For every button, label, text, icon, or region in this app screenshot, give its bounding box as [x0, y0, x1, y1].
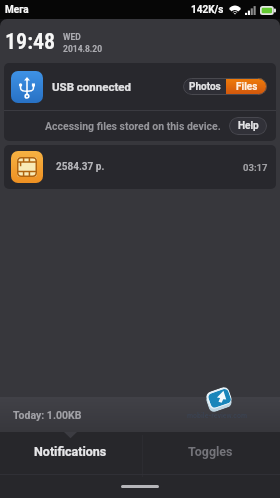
- staticText: 19:48: [5, 29, 56, 55]
- staticText: mobile-review.com: [187, 412, 248, 420]
- staticText: Help: [238, 120, 259, 132]
- button[interactable]: USB connected: [4, 63, 276, 110]
- button[interactable]: Notifications: [0, 432, 140, 474]
- staticText: 2014.8.20: [63, 44, 103, 54]
- staticText: Accessing files stored on this device.: [45, 120, 221, 132]
- staticText: Мега: [5, 4, 29, 16]
- staticText: Files: [236, 81, 258, 93]
- staticText: WED: [63, 32, 81, 42]
- staticText: 03:17: [243, 162, 268, 173]
- other: Battery: [260, 6, 276, 15]
- staticText: Today: 1.00KB: [13, 409, 82, 421]
- button[interactable]: Photos: [183, 78, 226, 95]
- staticText: 2584.37 р.: [56, 161, 105, 173]
- button[interactable]: Toggles: [140, 432, 280, 474]
- staticText: Photos: [189, 81, 221, 93]
- button[interactable]: Files: [226, 78, 267, 95]
- button[interactable]: 2584.37 р.: [4, 145, 276, 189]
- button[interactable]: Accessing files stored on this device.: [4, 111, 276, 141]
- staticText: Toggles: [188, 444, 233, 459]
- other: Signal strength: [245, 6, 256, 15]
- staticText: USB connected: [52, 80, 132, 93]
- staticText: 142K/s: [191, 4, 224, 16]
- other: Wi-Fi: [229, 5, 241, 15]
- button[interactable]: Help: [229, 117, 267, 135]
- staticText: Notifications: [34, 444, 107, 459]
